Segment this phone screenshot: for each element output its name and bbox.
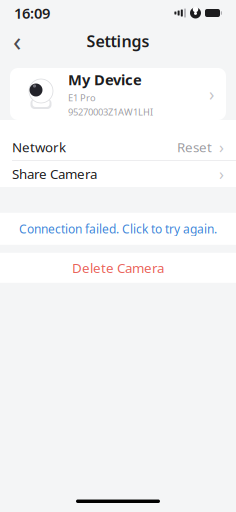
- staticText: ›: [219, 136, 224, 158]
- staticText: Share Camera: [12, 165, 97, 183]
- button[interactable]: Back: [0, 26, 34, 56]
- staticText: Delete Camera: [72, 259, 164, 277]
- button[interactable]: Network: [0, 134, 236, 160]
- button[interactable]: Share Camera: [0, 161, 236, 187]
- staticText: 16:09: [14, 3, 50, 23]
- staticText: Connection failed. Click to try again.: [19, 221, 217, 237]
- staticText: Settings: [86, 30, 149, 52]
- button[interactable]: My Device: [10, 68, 226, 120]
- staticText: 95270003Z1AW1LHI: [68, 106, 153, 118]
- staticText: Network: [12, 138, 66, 156]
- staticText: ›: [209, 82, 214, 105]
- button[interactable]: Connection failed. Click to try again.: [0, 213, 236, 245]
- staticText: Reset: [177, 138, 212, 156]
- staticText: E1 Pro: [68, 91, 96, 104]
- staticText: ›: [219, 163, 224, 184]
- button[interactable]: Delete Camera: [0, 253, 236, 283]
- staticText: ‹: [13, 23, 21, 59]
- staticText: My Device: [68, 70, 142, 89]
